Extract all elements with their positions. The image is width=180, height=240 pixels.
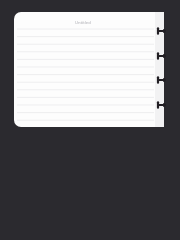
button[interactable]: Ruled note page <box>0 0 180 240</box>
